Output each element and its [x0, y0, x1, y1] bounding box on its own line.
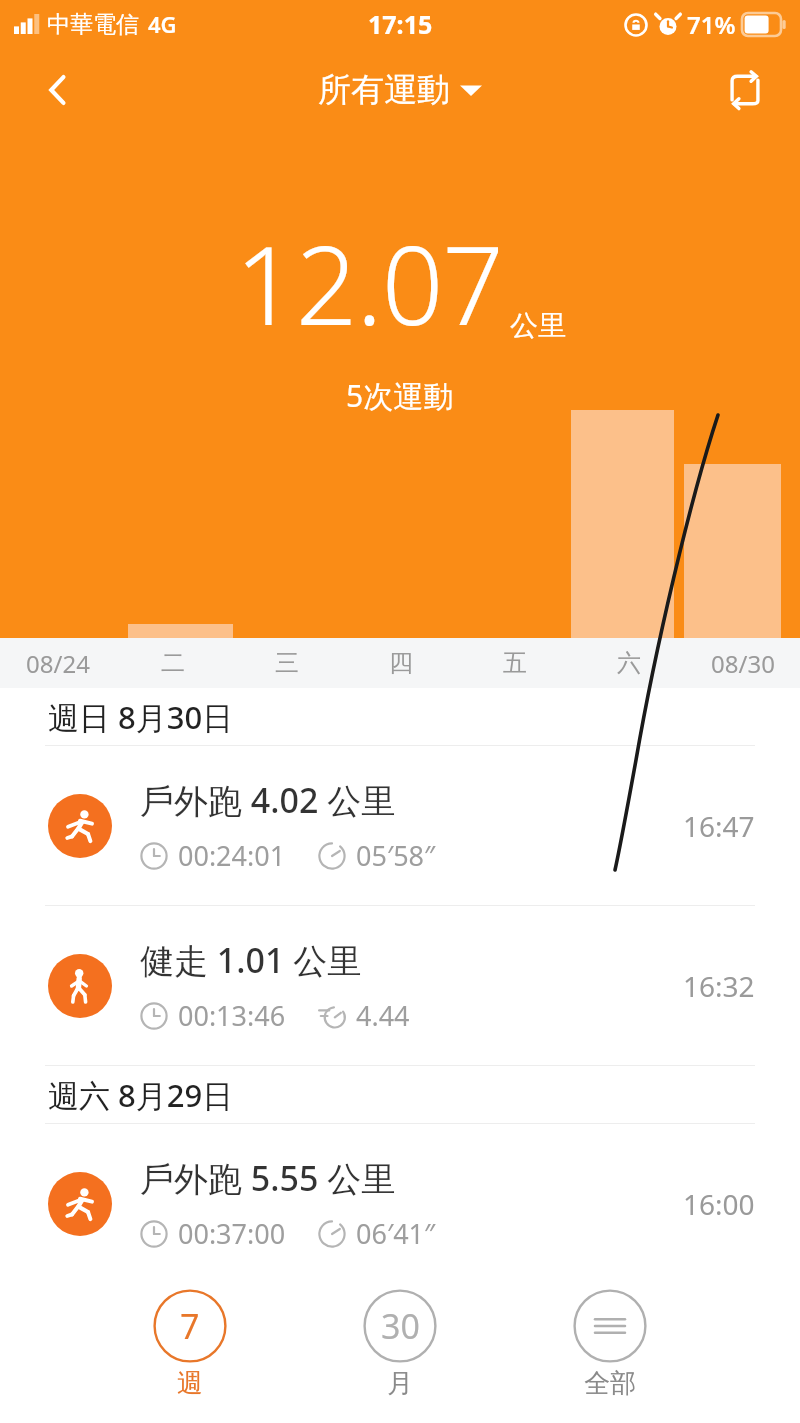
staticText: 5次運動: [346, 375, 454, 416]
staticText: 健走 1.01 公里: [140, 937, 362, 983]
staticText: 二: [161, 648, 185, 678]
staticText: 00:24:01: [178, 837, 286, 874]
button[interactable]: 戶外跑 4.02 公里: [0, 746, 800, 905]
staticText: 71%: [687, 8, 736, 41]
staticText: 08/24: [26, 647, 90, 680]
staticText: 4G: [148, 9, 177, 39]
staticText: 週六 8月29日: [48, 1074, 234, 1116]
staticText: 05′58″: [356, 837, 436, 874]
staticText: 公里: [510, 308, 566, 343]
staticText: 四: [389, 648, 413, 678]
staticText: 週日 8月30日: [48, 696, 234, 738]
staticText: 17:15: [368, 7, 433, 41]
staticText: 08/30: [711, 647, 775, 680]
button[interactable]: 戶外跑 5.55 公里: [0, 1124, 800, 1283]
staticText: 12.07: [235, 210, 504, 357]
button[interactable]: 全部: [555, 1289, 665, 1400]
button[interactable]: 7: [135, 1289, 245, 1400]
staticText: 7: [180, 1303, 200, 1349]
staticText: 戶外跑 4.02 公里: [140, 777, 396, 823]
button[interactable]: 30: [345, 1289, 455, 1400]
staticText: 00:37:00: [178, 1215, 286, 1252]
staticText: 16:32: [683, 967, 755, 1005]
staticText: 00:13:46: [178, 997, 286, 1034]
button[interactable]: Back: [28, 60, 88, 120]
staticText: 月: [387, 1367, 413, 1400]
staticText: 戶外跑 5.55 公里: [140, 1155, 396, 1201]
staticText: 16:00: [683, 1185, 755, 1223]
button[interactable]: 健走 1.01 公里: [0, 906, 800, 1065]
staticText: 4.44: [356, 997, 410, 1034]
staticText: 週: [177, 1367, 203, 1400]
staticText: 30: [381, 1303, 420, 1349]
staticText: 中華電信: [47, 10, 139, 39]
staticText: 全部: [584, 1367, 636, 1400]
staticText: 六: [617, 648, 641, 678]
button[interactable]: Sync: [716, 61, 774, 119]
button[interactable]: 所有運動: [318, 69, 482, 111]
staticText: 06′41″: [356, 1215, 436, 1252]
staticText: 16:47: [683, 807, 755, 845]
staticText: 所有運動: [318, 69, 450, 111]
staticText: 三: [275, 648, 299, 678]
staticText: 五: [503, 648, 527, 678]
